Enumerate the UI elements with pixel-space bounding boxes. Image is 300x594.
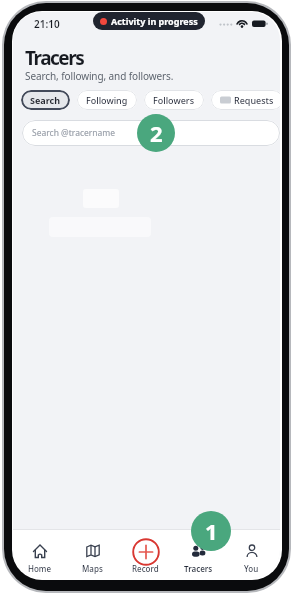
button[interactable]: Maps	[66, 530, 119, 578]
staticText: 2	[150, 118, 163, 148]
staticText: You	[244, 563, 259, 574]
button[interactable]: Tracers	[172, 530, 225, 578]
staticText: Search @tracername	[32, 127, 116, 139]
staticText: Search, following, and followers.	[25, 69, 174, 83]
button[interactable]: You	[225, 530, 278, 578]
button[interactable]: Search @tracername	[22, 120, 280, 146]
staticText: Followers	[153, 94, 195, 106]
button[interactable]: Requests	[211, 90, 280, 110]
staticText: Home	[28, 563, 52, 574]
button[interactable]: Record	[119, 530, 172, 578]
button[interactable]: Followers	[144, 90, 204, 110]
button[interactable]: Following	[77, 90, 137, 110]
button[interactable]: 1	[191, 511, 231, 551]
staticText: Tracers	[25, 45, 84, 71]
staticText: Following	[86, 94, 128, 106]
button[interactable]: Activity in progress	[93, 12, 205, 30]
staticText: 21:10	[34, 17, 60, 31]
staticText: Search	[30, 94, 61, 106]
staticText: Record	[132, 563, 159, 574]
button[interactable]: Search	[21, 90, 70, 110]
staticText: Requests	[234, 94, 274, 106]
staticText: Maps	[82, 563, 103, 574]
button[interactable]: 2	[137, 114, 175, 152]
staticText: 1	[205, 516, 218, 546]
staticText: Activity in progress	[111, 15, 198, 27]
staticText: Tracers	[184, 563, 213, 574]
button[interactable]: Home	[13, 530, 66, 578]
